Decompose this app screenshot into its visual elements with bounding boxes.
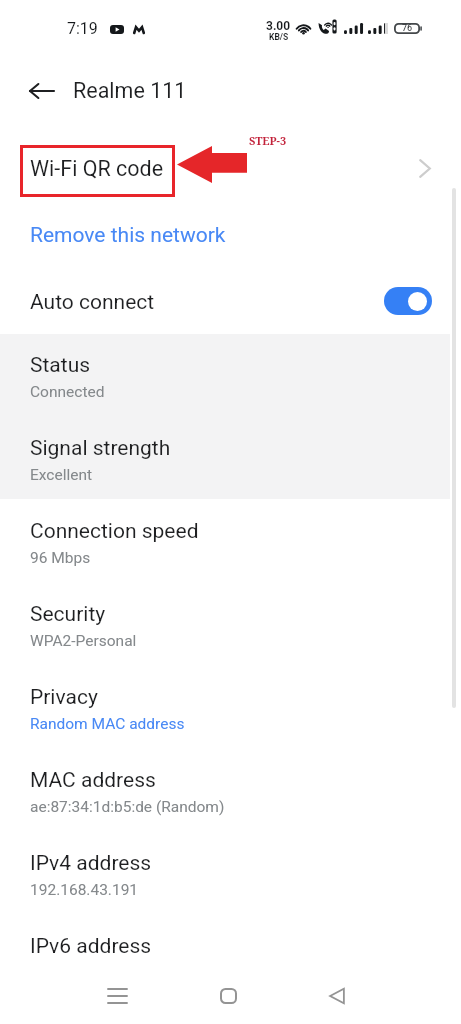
staticText: Connected: [30, 383, 105, 401]
staticText: Wi-Fi QR code: [30, 156, 164, 181]
staticText: WPA2-Personal: [30, 632, 137, 650]
staticText: MAC address: [30, 768, 156, 793]
staticText: 192.168.43.191: [30, 881, 139, 899]
button[interactable]: IPv4 address: [0, 834, 461, 917]
staticText: Remove this network: [30, 223, 226, 248]
button[interactable]: Back: [309, 968, 365, 1024]
button[interactable]: Status: [0, 336, 461, 419]
staticText: 96 Mbps: [30, 549, 91, 567]
button[interactable]: IPv6 address: [0, 917, 461, 967]
button[interactable]: Security: [0, 585, 461, 668]
staticText: STEP-3: [249, 133, 287, 148]
staticText: 76: [402, 23, 413, 34]
staticText: Auto connect: [30, 290, 155, 315]
button[interactable]: Back: [22, 71, 62, 111]
button[interactable]: MAC address: [0, 751, 461, 834]
staticText: Random MAC address: [30, 715, 185, 733]
staticText: 7:19: [67, 19, 98, 38]
staticText: ae:87:34:1d:b5:de (Random): [30, 798, 225, 816]
button[interactable]: Wi-Fi QR code: [0, 130, 461, 210]
button[interactable]: Privacy: [0, 668, 461, 751]
button[interactable]: Remove this network: [0, 210, 461, 266]
button[interactable]: Connection speed: [0, 502, 461, 585]
button[interactable]: Auto connect: [0, 272, 461, 330]
staticText: Connection speed: [30, 519, 199, 544]
staticText: IPv4 address: [30, 851, 152, 876]
staticText: IPv6 address: [30, 934, 152, 959]
button[interactable]: Home: [200, 968, 256, 1024]
staticText: 3.00: [266, 19, 291, 33]
staticText: Realme 111: [73, 78, 187, 103]
staticText: Status: [30, 353, 91, 378]
button[interactable]: Signal strength: [0, 419, 461, 502]
staticText: Privacy: [30, 685, 98, 710]
button[interactable]: Recent apps: [89, 968, 145, 1024]
staticText: Signal strength: [30, 436, 171, 461]
staticText: Excellent: [30, 466, 93, 484]
staticText: KB/S: [269, 32, 289, 42]
staticText: Security: [30, 602, 106, 627]
